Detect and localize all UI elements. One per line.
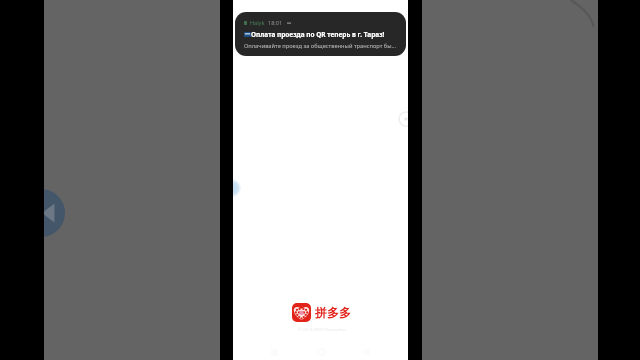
button[interactable]: Halyk [235, 12, 406, 56]
staticText: Оплата проезда по QR теперь в г. Тараз! [251, 30, 385, 39]
staticText: 18:01 [268, 19, 283, 26]
staticText: 拼多多 [315, 305, 351, 320]
staticText: Оплачивайте проезд за общественный транс… [244, 42, 397, 50]
staticText: Halyk [250, 19, 265, 26]
staticText: © 2015-2023 Pinduoduo [298, 327, 346, 333]
